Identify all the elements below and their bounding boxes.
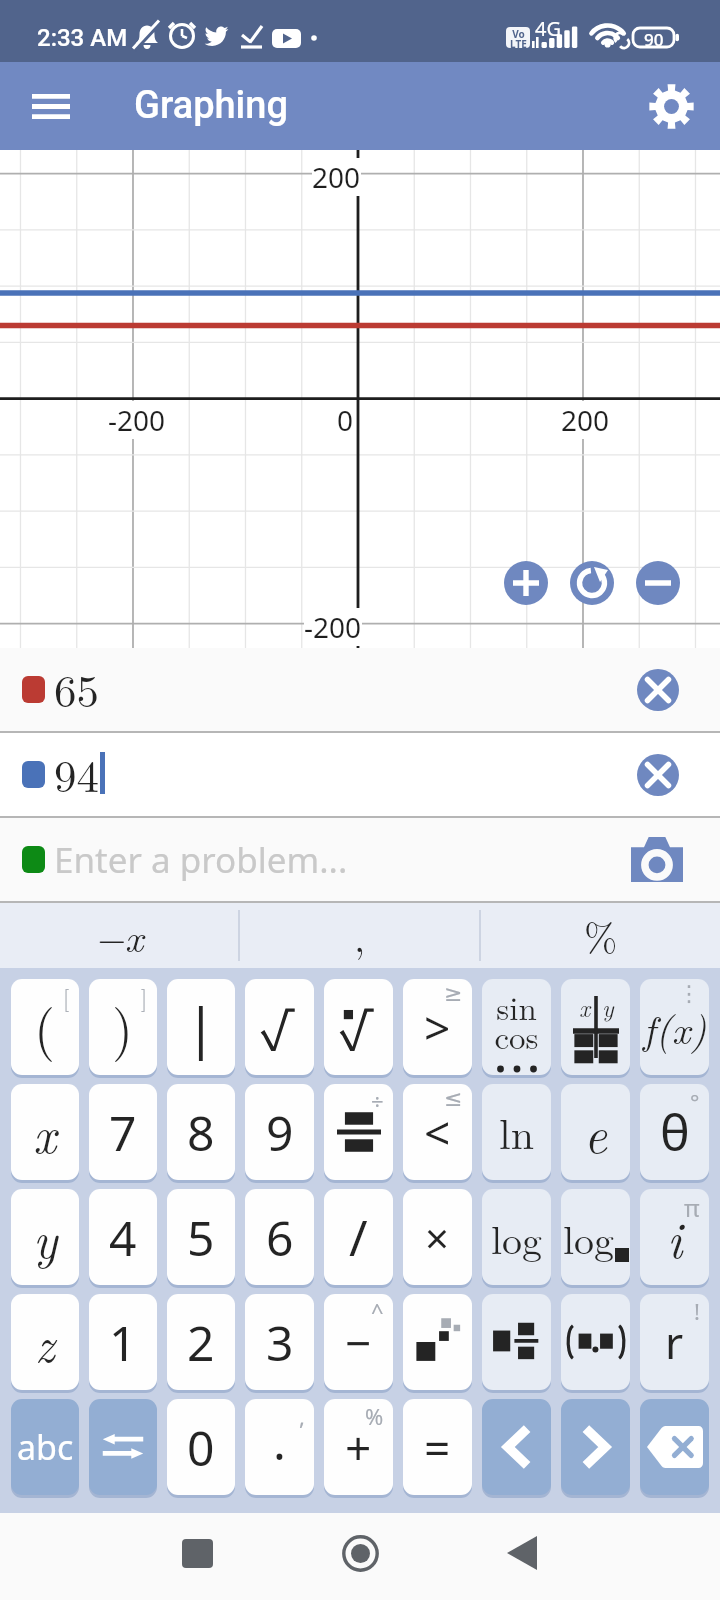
button[interactable]: z xyxy=(11,1294,79,1390)
staticText: 0 xyxy=(337,401,354,439)
button[interactable]: θ xyxy=(640,1084,709,1180)
button[interactable]: Home xyxy=(324,1517,396,1589)
staticText: 200 xyxy=(312,158,361,196)
button[interactable]: f(x) xyxy=(640,979,709,1075)
staticText: + xyxy=(345,1416,372,1479)
button[interactable]: ) xyxy=(89,979,157,1075)
button[interactable]: 0 xyxy=(167,1399,235,1495)
button[interactable]: 7 xyxy=(89,1084,157,1180)
staticText: θ xyxy=(660,1098,690,1166)
staticText: / xyxy=(349,1203,368,1271)
button[interactable]: 65 xyxy=(0,648,720,731)
button[interactable]: 9 xyxy=(245,1084,314,1180)
staticText: y xyxy=(602,990,614,1024)
button[interactable]: Zoom in xyxy=(504,561,548,605)
staticText: 8 xyxy=(187,1100,215,1165)
button[interactable]: Zoom out xyxy=(636,561,680,605)
staticText: Graphing xyxy=(134,83,288,128)
button[interactable]: 94 xyxy=(0,733,720,816)
button[interactable]: 4 xyxy=(89,1189,157,1285)
button[interactable]: y xyxy=(11,1189,79,1285)
button[interactable]: , xyxy=(240,903,479,968)
button[interactable] xyxy=(403,1294,472,1390)
staticText: log xyxy=(491,1209,543,1266)
staticText: < xyxy=(424,1101,451,1164)
staticText: > xyxy=(424,996,451,1059)
button[interactable]: ( xyxy=(11,979,79,1075)
button[interactable]: sin cos xyxy=(482,979,551,1075)
staticText: ÷ xyxy=(371,1086,384,1116)
button[interactable] xyxy=(89,1399,157,1495)
button[interactable]: | xyxy=(167,979,235,1075)
staticText: ≤ xyxy=(444,1086,463,1112)
staticText: ^ xyxy=(371,1296,384,1326)
staticText: ° xyxy=(690,1086,700,1116)
button[interactable]: Scan with camera xyxy=(631,837,683,882)
button[interactable]: Reset zoom xyxy=(570,561,614,605)
button[interactable]: 2 xyxy=(167,1294,235,1390)
staticText: 94 xyxy=(54,741,100,805)
button[interactable]: − xyxy=(324,1294,393,1390)
button[interactable]: / xyxy=(324,1189,393,1285)
button[interactable]: 6 xyxy=(245,1189,314,1285)
staticText: ln xyxy=(499,1102,535,1162)
button[interactable]: Back xyxy=(486,1517,558,1589)
staticText: −x xyxy=(94,907,144,964)
button[interactable] xyxy=(561,1294,630,1390)
button[interactable] xyxy=(482,1294,551,1390)
button[interactable]: + xyxy=(324,1399,393,1495)
button[interactable]: . xyxy=(245,1399,314,1495)
staticText: , xyxy=(299,1401,305,1431)
button[interactable]: = xyxy=(403,1399,472,1495)
button[interactable]: 8 xyxy=(167,1084,235,1180)
staticText: , xyxy=(354,907,366,964)
staticText: 4 xyxy=(109,1205,137,1270)
staticText: 65 xyxy=(54,656,100,720)
staticText: % xyxy=(584,907,618,964)
button[interactable]: ln xyxy=(482,1084,551,1180)
button[interactable]: % xyxy=(481,903,720,968)
staticText: 0 xyxy=(187,1415,215,1480)
staticText: − xyxy=(345,1311,372,1374)
button[interactable]: Settings xyxy=(633,68,709,144)
button[interactable]: Clear expression xyxy=(637,754,679,796)
button[interactable]: 3 xyxy=(245,1294,314,1390)
staticText: 2:33 AM xyxy=(37,24,128,52)
button[interactable]: −x xyxy=(0,903,238,968)
button[interactable]: > xyxy=(403,979,472,1075)
button[interactable]: e xyxy=(561,1084,630,1180)
button[interactable]: x xyxy=(561,979,630,1075)
button[interactable]: log xyxy=(482,1189,551,1285)
staticText: sin cos xyxy=(494,983,539,1059)
button[interactable]: Menu xyxy=(13,68,89,144)
button[interactable]: Recent apps xyxy=(161,1517,233,1589)
staticText: % xyxy=(365,1401,384,1431)
button[interactable]: i xyxy=(640,1189,709,1285)
button[interactable] xyxy=(482,1399,551,1495)
staticText: π xyxy=(684,1191,700,1224)
button[interactable]: x xyxy=(11,1084,79,1180)
staticText: ) xyxy=(112,987,134,1064)
staticText: -200 xyxy=(304,608,362,646)
button[interactable]: < xyxy=(403,1084,472,1180)
staticText: x xyxy=(579,990,591,1024)
button[interactable]: ÷ xyxy=(324,1084,393,1180)
staticText: -200 xyxy=(108,401,166,439)
staticText: . xyxy=(273,1409,286,1474)
button[interactable] xyxy=(640,1399,709,1495)
button[interactable]: Clear expression xyxy=(637,669,679,711)
button[interactable] xyxy=(324,979,393,1075)
button[interactable]: × xyxy=(403,1189,472,1285)
button[interactable]: 5 xyxy=(167,1189,235,1285)
button[interactable] xyxy=(561,1399,630,1495)
staticText: Vo LTE xyxy=(510,27,527,48)
staticText: 5 xyxy=(187,1205,215,1270)
staticText: log xyxy=(563,1209,615,1266)
staticText: ] xyxy=(141,981,148,1012)
button[interactable]: 1 xyxy=(89,1294,157,1390)
button[interactable]: Enter a problem... xyxy=(0,818,720,901)
button[interactable]: abc xyxy=(11,1399,79,1495)
button[interactable]: r xyxy=(640,1294,709,1390)
button[interactable]: log xyxy=(561,1189,630,1285)
button[interactable] xyxy=(245,979,314,1075)
